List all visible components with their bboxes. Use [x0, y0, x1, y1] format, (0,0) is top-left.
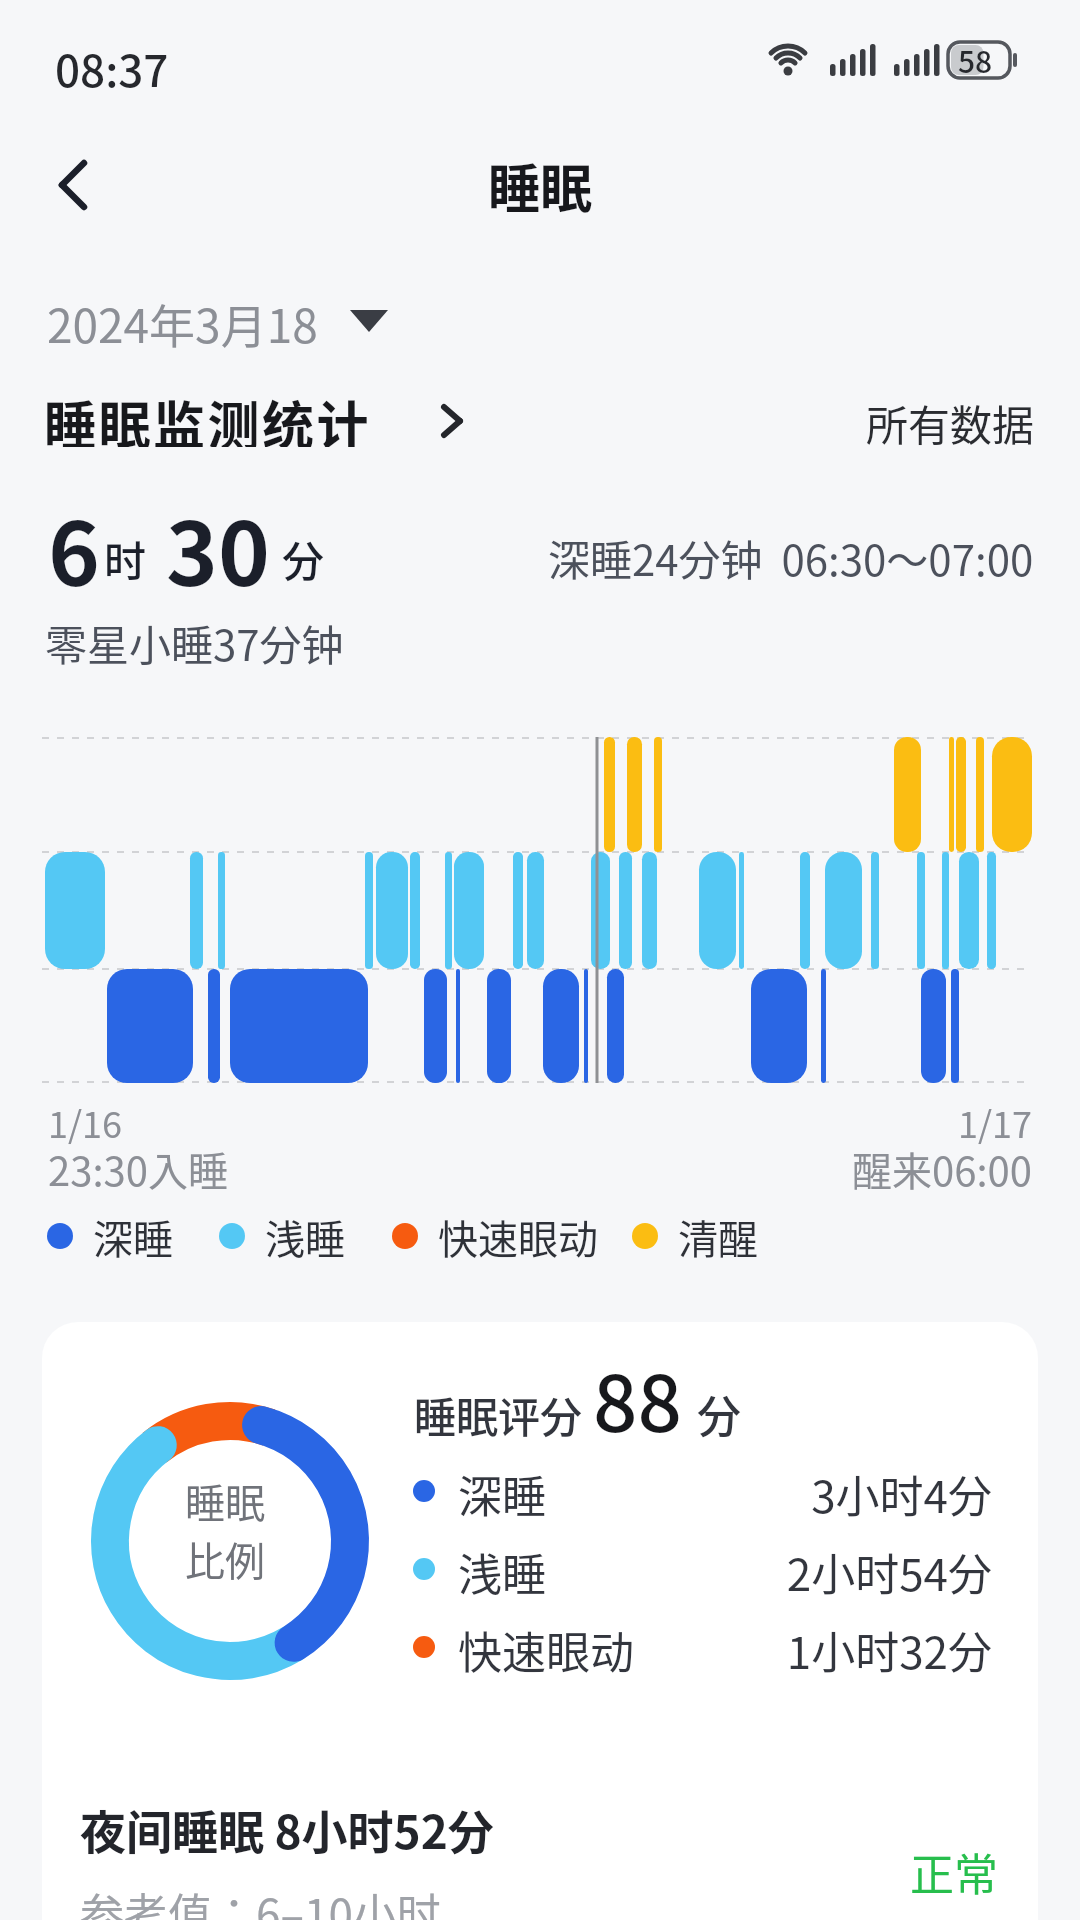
staticText: 08:37 — [55, 36, 169, 100]
staticText: 3小时4分 — [811, 1462, 992, 1522]
staticText: 深睡24分钟 06:30～07:00 — [548, 527, 1034, 588]
staticText: 23:30入睡 — [48, 1140, 228, 1198]
staticText: 分 — [282, 528, 325, 589]
staticText: 6 — [48, 484, 100, 611]
button[interactable]: 睡眠监测统计 — [44, 385, 484, 447]
staticText: 分 — [697, 1382, 741, 1446]
staticText: 2小时54分 — [786, 1540, 992, 1600]
staticText: 正常 — [910, 1840, 998, 1904]
staticText: 时 — [104, 528, 147, 589]
staticText: 夜间睡眠 8小时52分 — [80, 1796, 494, 1863]
button[interactable]: 所有数据 — [845, 392, 1035, 448]
button[interactable] — [40, 148, 112, 220]
staticText: 58 — [958, 38, 993, 81]
button[interactable]: 深睡 — [42, 1462, 1038, 1522]
staticText: 1小时32分 — [786, 1618, 992, 1678]
staticText: 浅睡 — [265, 1208, 345, 1266]
staticText: 1/16 — [48, 1096, 123, 1148]
staticText: 深睡 — [93, 1208, 173, 1266]
staticText: 浅睡 — [458, 1540, 546, 1600]
staticText: 1/17 — [957, 1096, 1032, 1148]
staticText: 深睡 — [458, 1462, 546, 1522]
staticText: 零星小睡37分钟 — [45, 612, 344, 673]
staticText: 醒来06:00 — [852, 1140, 1032, 1198]
staticText: 所有数据 — [866, 392, 1035, 448]
staticText: 参考值：6–10小时 — [80, 1880, 441, 1920]
staticText: 88 — [593, 1342, 682, 1455]
staticText: 睡眠 — [488, 148, 593, 220]
staticText: 快速眼动 — [438, 1208, 598, 1266]
staticText: 清醒 — [678, 1208, 758, 1266]
button[interactable]: 快速眼动 — [42, 1618, 1038, 1678]
staticText: 快速眼动 — [458, 1618, 634, 1678]
staticText: 30 — [166, 484, 270, 611]
button[interactable]: 浅睡 — [42, 1540, 1038, 1600]
staticText: 睡眠 比例 — [185, 1472, 265, 1588]
staticText: 2024年3月18 — [47, 290, 318, 350]
staticText: 睡眠评分 — [414, 1384, 583, 1445]
button[interactable]: 2024年3月18 — [45, 290, 395, 350]
staticText: 睡眠监测统计 — [44, 385, 372, 447]
